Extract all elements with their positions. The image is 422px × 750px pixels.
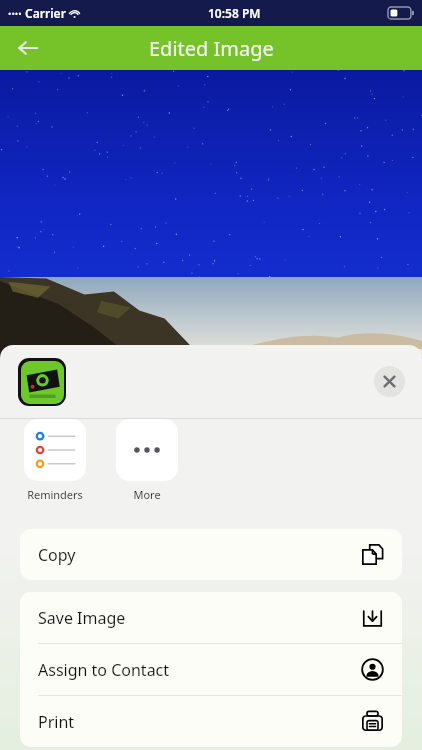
staticText: Print: [38, 711, 75, 733]
staticText: Copy: [38, 544, 76, 566]
button[interactable]: Back: [6, 26, 50, 70]
button[interactable]: Reminders: [20, 419, 90, 502]
staticText: Carrier: [22, 5, 66, 21]
button[interactable]: Copy: [20, 529, 402, 580]
button[interactable]: More: [112, 419, 182, 502]
button[interactable]: Print: [20, 696, 402, 747]
staticText: Assign to Contact: [38, 659, 170, 681]
staticText: Reminders: [27, 487, 83, 502]
button[interactable]: Assign to Contact: [20, 644, 402, 695]
staticText: More: [133, 487, 161, 502]
staticText: Edited Image: [149, 35, 274, 62]
button[interactable]: Save Image: [20, 592, 402, 643]
button[interactable]: Photo App: [18, 358, 66, 406]
staticText: 10:58 PM: [208, 5, 261, 21]
staticText: Save Image: [38, 607, 126, 629]
staticText: ••••: [8, 7, 22, 19]
button[interactable]: Close: [374, 366, 405, 397]
